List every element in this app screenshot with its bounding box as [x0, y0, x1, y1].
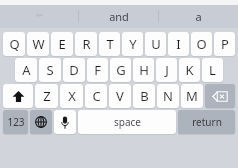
button[interactable]: B — [133, 84, 155, 108]
button[interactable]: U — [145, 32, 166, 56]
button[interactable]: K — [179, 58, 200, 82]
button[interactable]: M — [181, 84, 203, 108]
button[interactable]: and — [79, 5, 158, 28]
staticText: N — [163, 87, 173, 105]
button[interactable]: Backspace — [205, 84, 235, 108]
button[interactable]: N — [157, 84, 179, 108]
staticText: J — [165, 61, 169, 79]
button[interactable]: E — [51, 32, 73, 56]
staticText: I — [176, 35, 181, 53]
button[interactable]: 123 — [3, 110, 28, 134]
button[interactable]: a — [159, 5, 238, 28]
staticText: A — [22, 61, 31, 79]
staticText: E — [58, 35, 66, 53]
staticText: space — [114, 115, 141, 129]
staticText: K — [185, 61, 194, 79]
staticText: F — [94, 61, 101, 79]
button[interactable]: D — [63, 58, 85, 82]
button[interactable]: O — [191, 32, 212, 56]
staticText: T — [106, 35, 114, 53]
staticText: U — [151, 35, 161, 53]
staticText: H — [139, 61, 149, 79]
button[interactable]: Switch keyboard language — [30, 110, 52, 134]
staticText: V — [116, 87, 124, 105]
button[interactable]: F — [87, 58, 108, 82]
staticText: 123 — [7, 115, 25, 129]
button[interactable]: P — [214, 32, 235, 56]
button[interactable]: Z — [35, 84, 58, 108]
staticText: Z — [43, 87, 51, 105]
button[interactable]: Shift — [3, 84, 33, 108]
staticText: C — [92, 87, 101, 105]
staticText: R — [82, 35, 91, 53]
button[interactable]: C — [85, 84, 107, 108]
button[interactable]: V — [109, 84, 131, 108]
button[interactable]: A — [15, 58, 37, 82]
staticText: B — [140, 87, 149, 105]
staticText: P — [221, 35, 229, 53]
button[interactable]: J — [156, 58, 177, 82]
staticText: M — [186, 87, 198, 105]
button[interactable]: L — [202, 58, 223, 82]
staticText: D — [69, 61, 79, 79]
button[interactable]: W — [27, 32, 49, 56]
staticText: “” — [36, 11, 43, 23]
button[interactable]: I — [168, 32, 189, 56]
button[interactable]: return — [178, 110, 235, 134]
button[interactable]: G — [110, 58, 131, 82]
staticText: X — [68, 87, 76, 105]
staticText: and — [109, 9, 129, 24]
staticText: Q — [9, 35, 20, 53]
button[interactable]: Q — [3, 32, 25, 56]
button[interactable]: X — [60, 84, 83, 108]
staticText: L — [209, 61, 216, 79]
button[interactable]: S — [39, 58, 61, 82]
staticText: W — [32, 35, 45, 53]
button[interactable]: Y — [122, 32, 143, 56]
staticText: G — [116, 61, 126, 79]
staticText: Y — [129, 35, 137, 53]
button[interactable]: R — [75, 32, 97, 56]
staticText: return — [192, 115, 222, 129]
staticText: a — [195, 9, 202, 24]
button[interactable]: T — [99, 32, 120, 56]
button[interactable]: H — [133, 58, 154, 82]
button[interactable]: space — [78, 110, 176, 134]
staticText: S — [46, 61, 54, 79]
staticText: O — [196, 35, 207, 53]
button[interactable]: Dictate — [54, 110, 76, 134]
